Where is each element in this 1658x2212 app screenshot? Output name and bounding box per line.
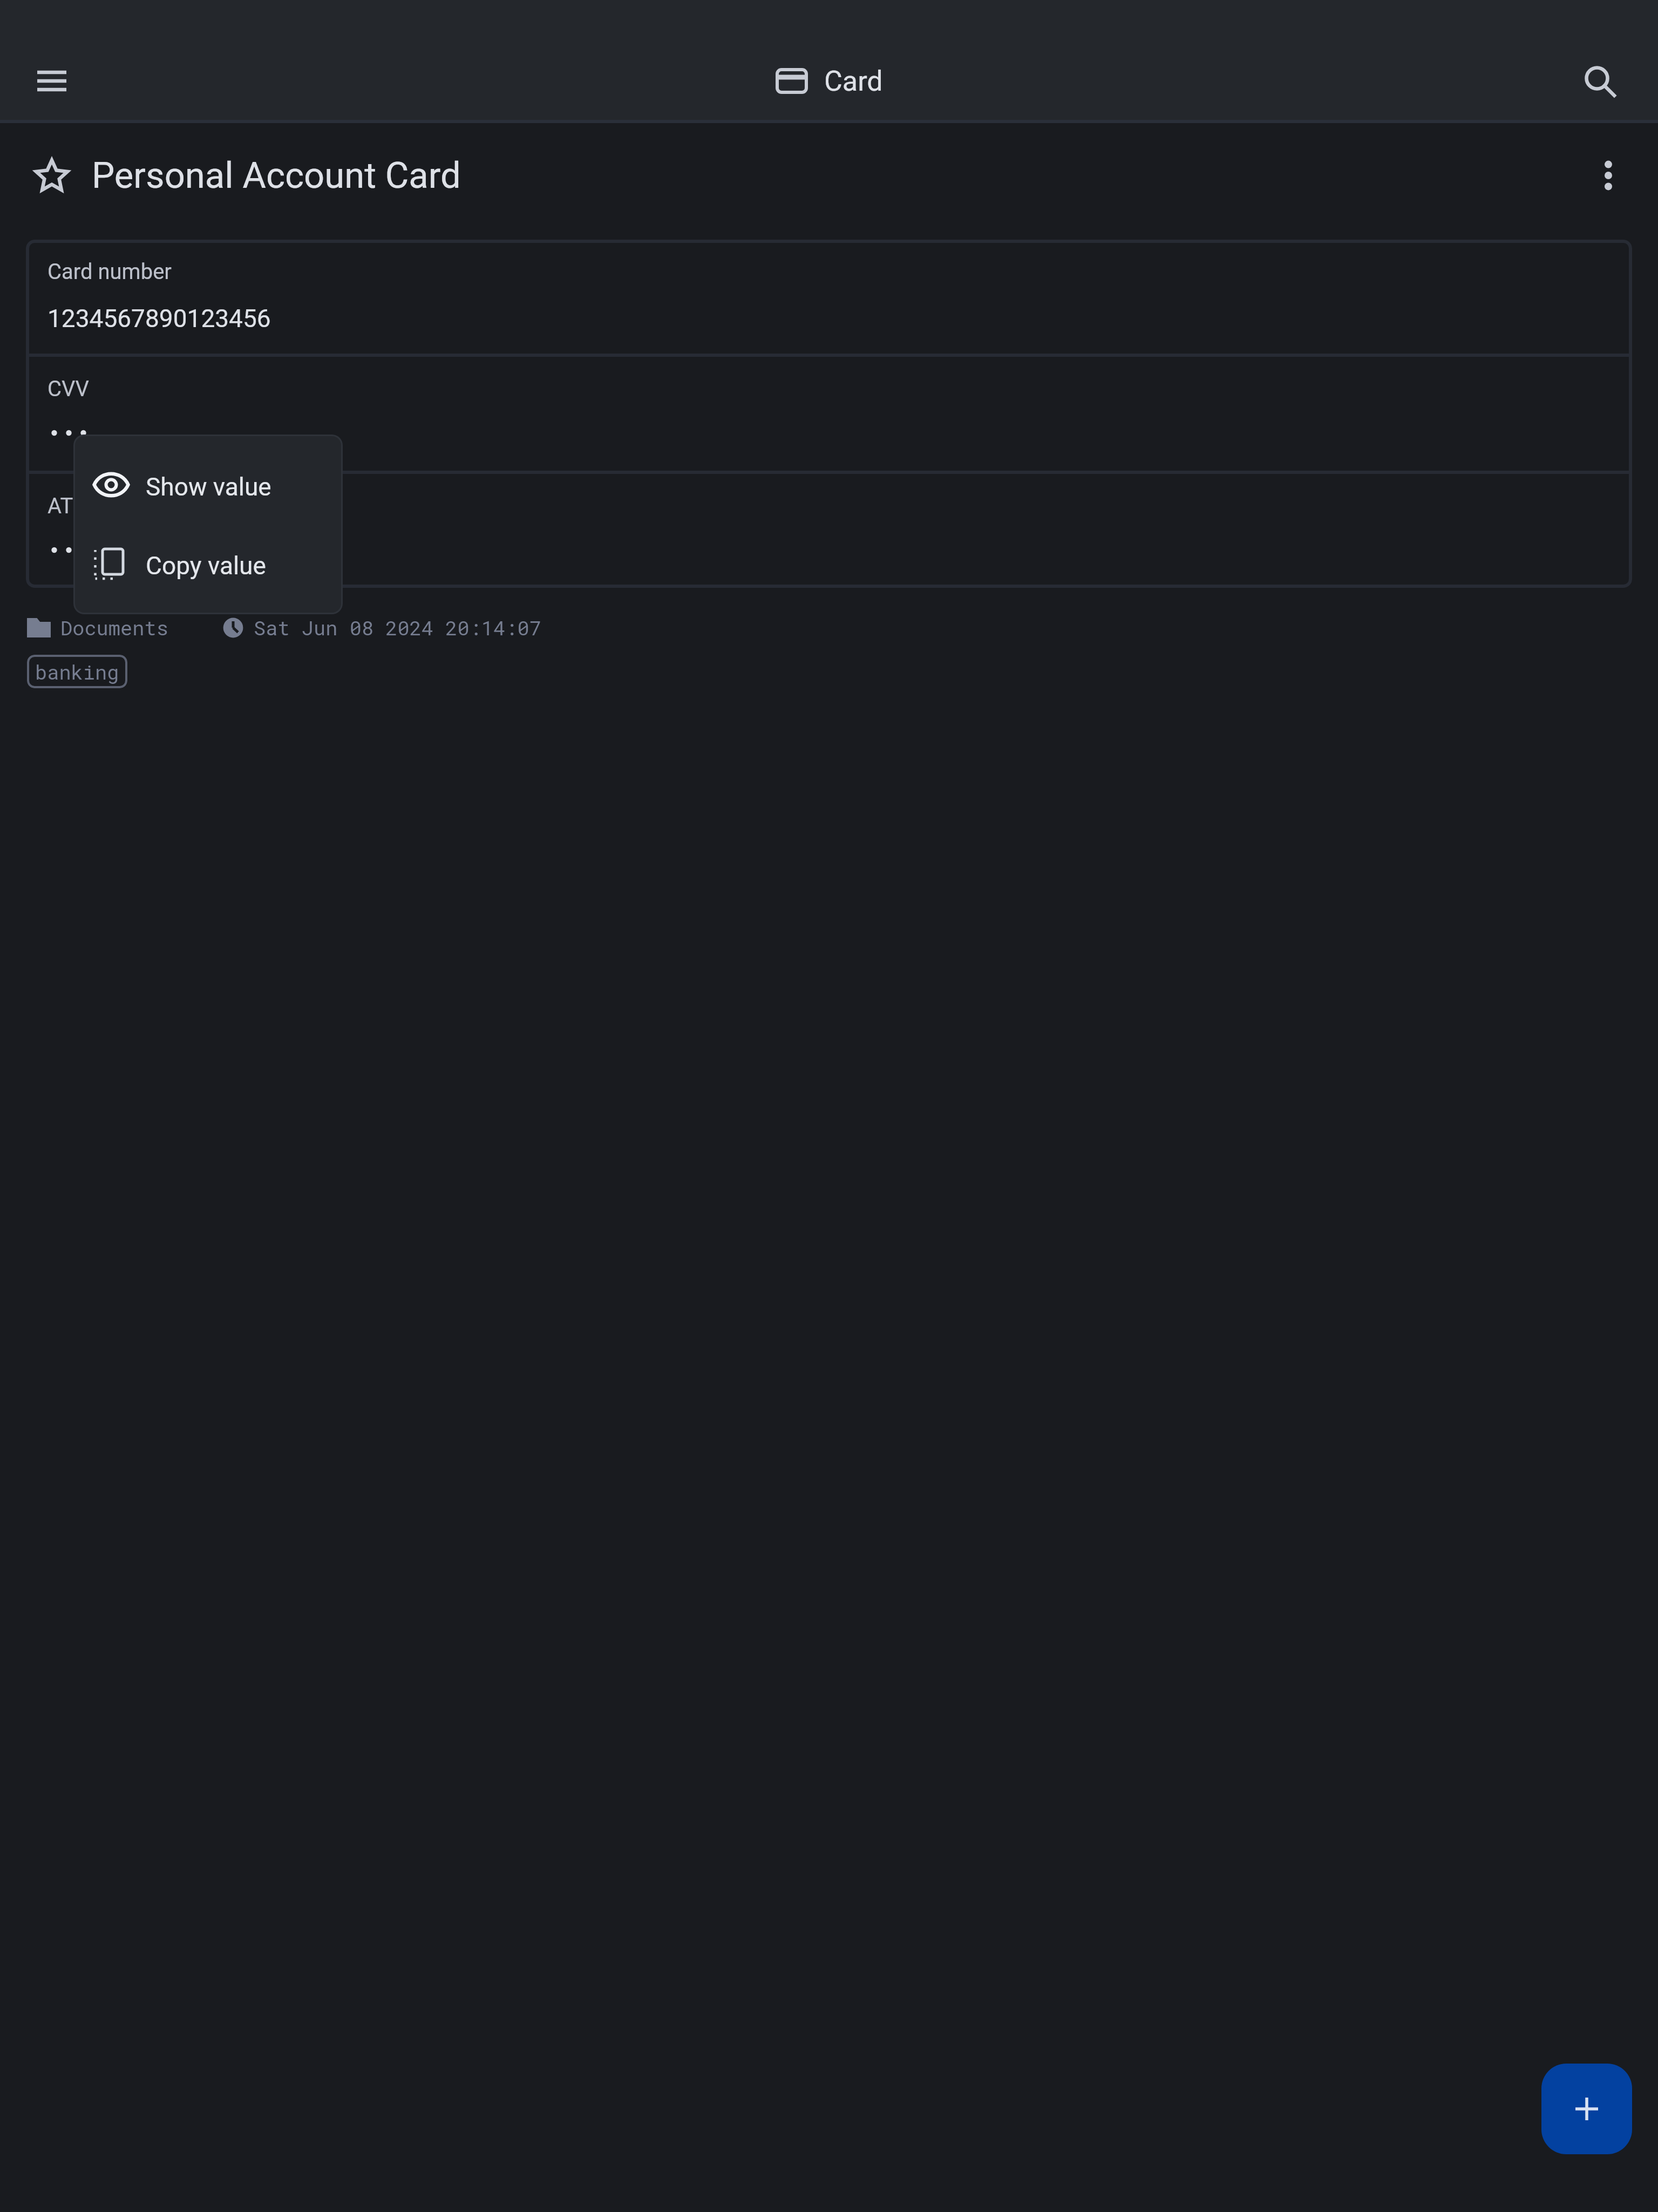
button[interactable]: Copy value [73, 528, 343, 614]
button[interactable]: banking [27, 655, 127, 688]
button[interactable]: Search [1579, 54, 1633, 108]
staticText: Documents [60, 614, 168, 641]
button[interactable]: Add [1541, 2064, 1632, 2154]
staticText: CVV [47, 376, 89, 402]
staticText: Show value [146, 472, 271, 501]
staticText: banking [35, 659, 119, 685]
staticText: Card [824, 65, 883, 98]
staticText: Card number [47, 259, 172, 284]
button[interactable]: Card number [26, 240, 1632, 354]
button[interactable]: CVV [26, 357, 1632, 471]
staticText: Copy value [146, 551, 266, 580]
staticText: ATM PIN [47, 493, 132, 519]
button[interactable]: More options [1584, 151, 1633, 200]
staticText: Sat Jun 08 2024 20:14:07 [254, 614, 541, 641]
button[interactable]: ATM PIN [26, 474, 1632, 588]
staticText: Personal Account Card [92, 154, 461, 197]
staticText: 1234567890123456 [47, 304, 271, 333]
button[interactable]: Menu [25, 54, 79, 108]
button[interactable]: Show value [73, 435, 343, 521]
button[interactable]: Favorite [26, 150, 78, 201]
